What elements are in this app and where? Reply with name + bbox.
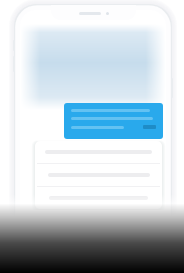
button[interactable] [35,186,162,209]
button[interactable] [35,163,162,186]
button[interactable] [35,141,162,163]
button[interactable] [64,103,163,139]
